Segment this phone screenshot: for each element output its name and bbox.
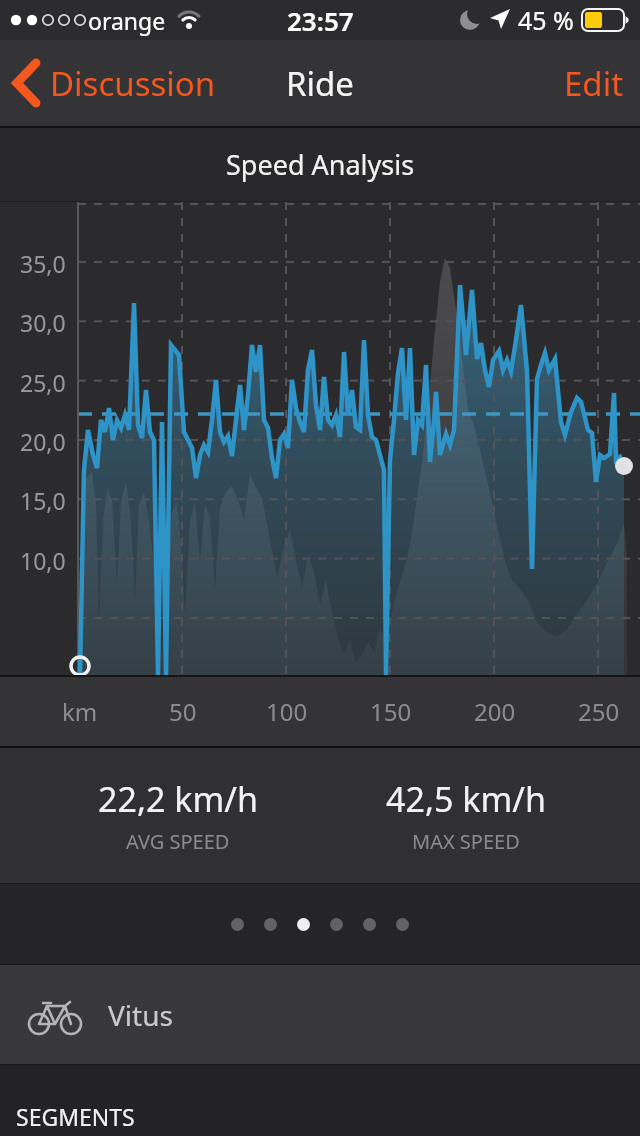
staticText: 45 % bbox=[518, 3, 574, 37]
staticText: 22,2 km/h bbox=[98, 776, 258, 822]
staticText: 30,0 bbox=[20, 307, 66, 335]
staticText: 50 bbox=[169, 695, 197, 728]
button[interactable] bbox=[231, 918, 244, 931]
button[interactable]: Edit bbox=[564, 61, 640, 106]
staticText: 150 bbox=[370, 695, 412, 728]
button[interactable]: Vitus bbox=[0, 965, 640, 1064]
staticText: Edit bbox=[564, 61, 624, 106]
staticText: 10,0 bbox=[20, 545, 66, 573]
staticText: 250 bbox=[578, 695, 620, 728]
staticText: 20,0 bbox=[20, 426, 66, 454]
staticText: orange bbox=[88, 5, 166, 36]
staticText: Vitus bbox=[108, 996, 173, 1034]
button[interactable]: Discussion bbox=[12, 60, 216, 106]
staticText: 25,0 bbox=[20, 367, 66, 395]
staticText: AVG SPEED bbox=[126, 828, 230, 855]
staticText: 100 bbox=[266, 695, 308, 728]
staticText: km bbox=[62, 695, 98, 728]
button[interactable] bbox=[363, 918, 376, 931]
staticText: 23:57 bbox=[287, 3, 354, 38]
staticText: 15,0 bbox=[20, 485, 66, 513]
staticText: Discussion bbox=[50, 61, 216, 106]
button[interactable] bbox=[297, 918, 310, 931]
staticText: SEGMENTS bbox=[16, 1101, 135, 1132]
button[interactable] bbox=[264, 918, 277, 931]
staticText: Speed Analysis bbox=[226, 146, 415, 183]
staticText: MAX SPEED bbox=[412, 828, 520, 855]
staticText: 200 bbox=[474, 695, 516, 728]
button[interactable] bbox=[396, 918, 409, 931]
button[interactable] bbox=[330, 918, 343, 931]
staticText: 35,0 bbox=[20, 248, 66, 276]
staticText: 42,5 km/h bbox=[386, 776, 546, 822]
staticText: Ride bbox=[286, 61, 354, 106]
